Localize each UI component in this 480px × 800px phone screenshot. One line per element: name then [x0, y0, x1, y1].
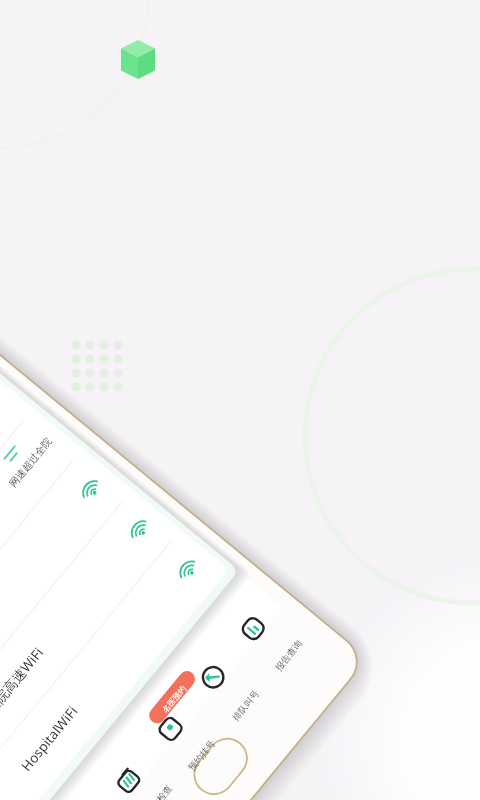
staticText: 报告查询 — [273, 638, 304, 673]
staticText: HospitalWiFi — [17, 702, 81, 775]
staticText: 预约挂号 — [186, 738, 217, 773]
button[interactable]: Hospital WiFi list shown on a phone — [0, 0, 480, 800]
staticText: 网速超过全院 — [6, 435, 54, 490]
staticText: 医技检查 — [143, 783, 174, 800]
staticText: 协和医院高速WiFi — [0, 644, 47, 738]
staticText: 名医预约 — [160, 683, 188, 715]
staticText: 排队叫号 — [230, 688, 261, 723]
